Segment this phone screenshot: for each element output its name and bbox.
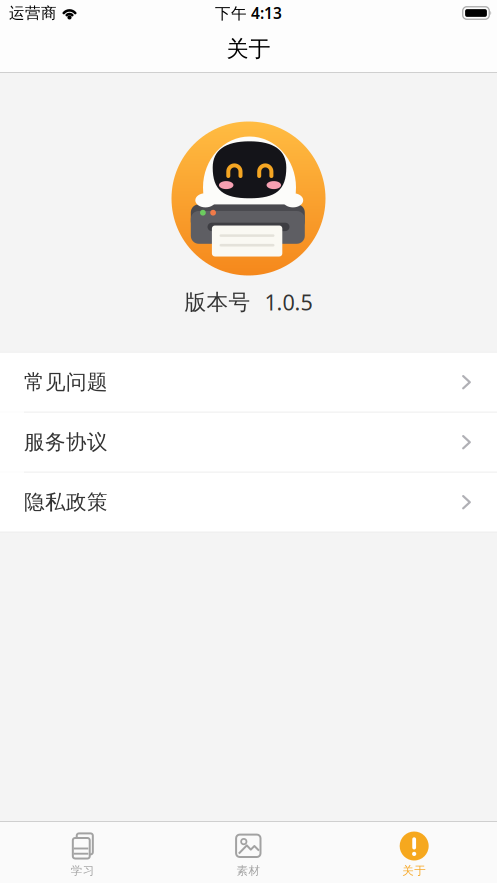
button[interactable]: 关于 (331, 822, 497, 883)
button[interactable]: 学习 (0, 822, 166, 883)
button[interactable]: 服务协议 (0, 413, 497, 472)
staticText: 版本号 (184, 289, 250, 316)
staticText: 常见问题 (24, 369, 108, 395)
staticText: 关于 (226, 35, 270, 63)
staticText: 关于 (402, 863, 426, 878)
staticText: 1.0.5 (264, 287, 312, 317)
staticText: 素材 (236, 863, 260, 878)
staticText: 运营商 (9, 3, 57, 23)
staticText: 隐私政策 (24, 489, 108, 515)
button[interactable]: 隐私政策 (0, 473, 497, 532)
button[interactable]: 常见问题 (0, 353, 497, 412)
staticText: 下午 4:13 (215, 2, 282, 23)
button[interactable]: 素材 (166, 822, 331, 883)
staticText: 服务协议 (24, 429, 108, 455)
staticText: 学习 (71, 863, 95, 878)
